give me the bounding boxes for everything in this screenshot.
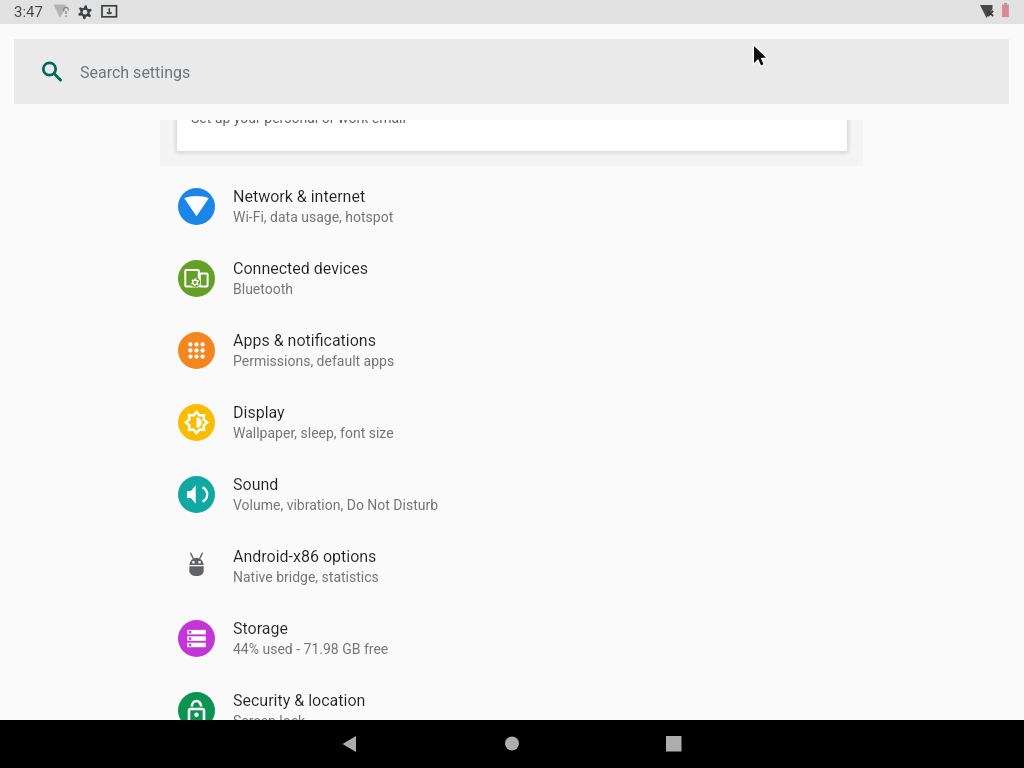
button[interactable]: Android-x86 options (0, 530, 1024, 602)
staticText: 3:47 (14, 3, 43, 21)
button[interactable]: Set up your personal or work email (177, 74, 847, 151)
staticText: Volume, vibration, Do Not Disturb (233, 497, 439, 513)
button[interactable]: Storage (0, 602, 1024, 674)
staticText: Screen lock (233, 713, 306, 729)
button[interactable]: Security & location (0, 674, 1024, 746)
staticText: Connected devices (233, 259, 368, 278)
staticText: Search settings (80, 63, 191, 82)
staticText: Storage (233, 619, 288, 638)
button[interactable]: Network & internet (0, 170, 1024, 242)
button[interactable]: Back (325, 720, 373, 768)
staticText: Network & internet (233, 187, 366, 206)
staticText: Security & location (233, 691, 366, 710)
button[interactable]: Home (488, 720, 536, 768)
staticText: Apps & notifications (233, 331, 376, 350)
staticText: Android-x86 options (233, 547, 377, 566)
button[interactable]: Sound (0, 458, 1024, 530)
staticText: Set up your personal or work email (191, 110, 406, 126)
staticText: Wi-Fi, data usage, hotspot (233, 209, 394, 225)
staticText: Display (233, 403, 285, 422)
button[interactable]: Recent apps (650, 720, 698, 768)
button[interactable]: Display (0, 386, 1024, 458)
button[interactable]: Connected devices (0, 242, 1024, 314)
button[interactable]: Search settings (14, 39, 1009, 104)
staticText: Sound (233, 475, 279, 494)
staticText: Native bridge, statistics (233, 569, 379, 585)
staticText: 44% used - 71.98 GB free (233, 641, 389, 657)
staticText: Permissions, default apps (233, 353, 395, 369)
button[interactable]: Apps & notifications (0, 314, 1024, 386)
staticText: Bluetooth (233, 281, 293, 297)
staticText: Wallpaper, sleep, font size (233, 425, 394, 441)
